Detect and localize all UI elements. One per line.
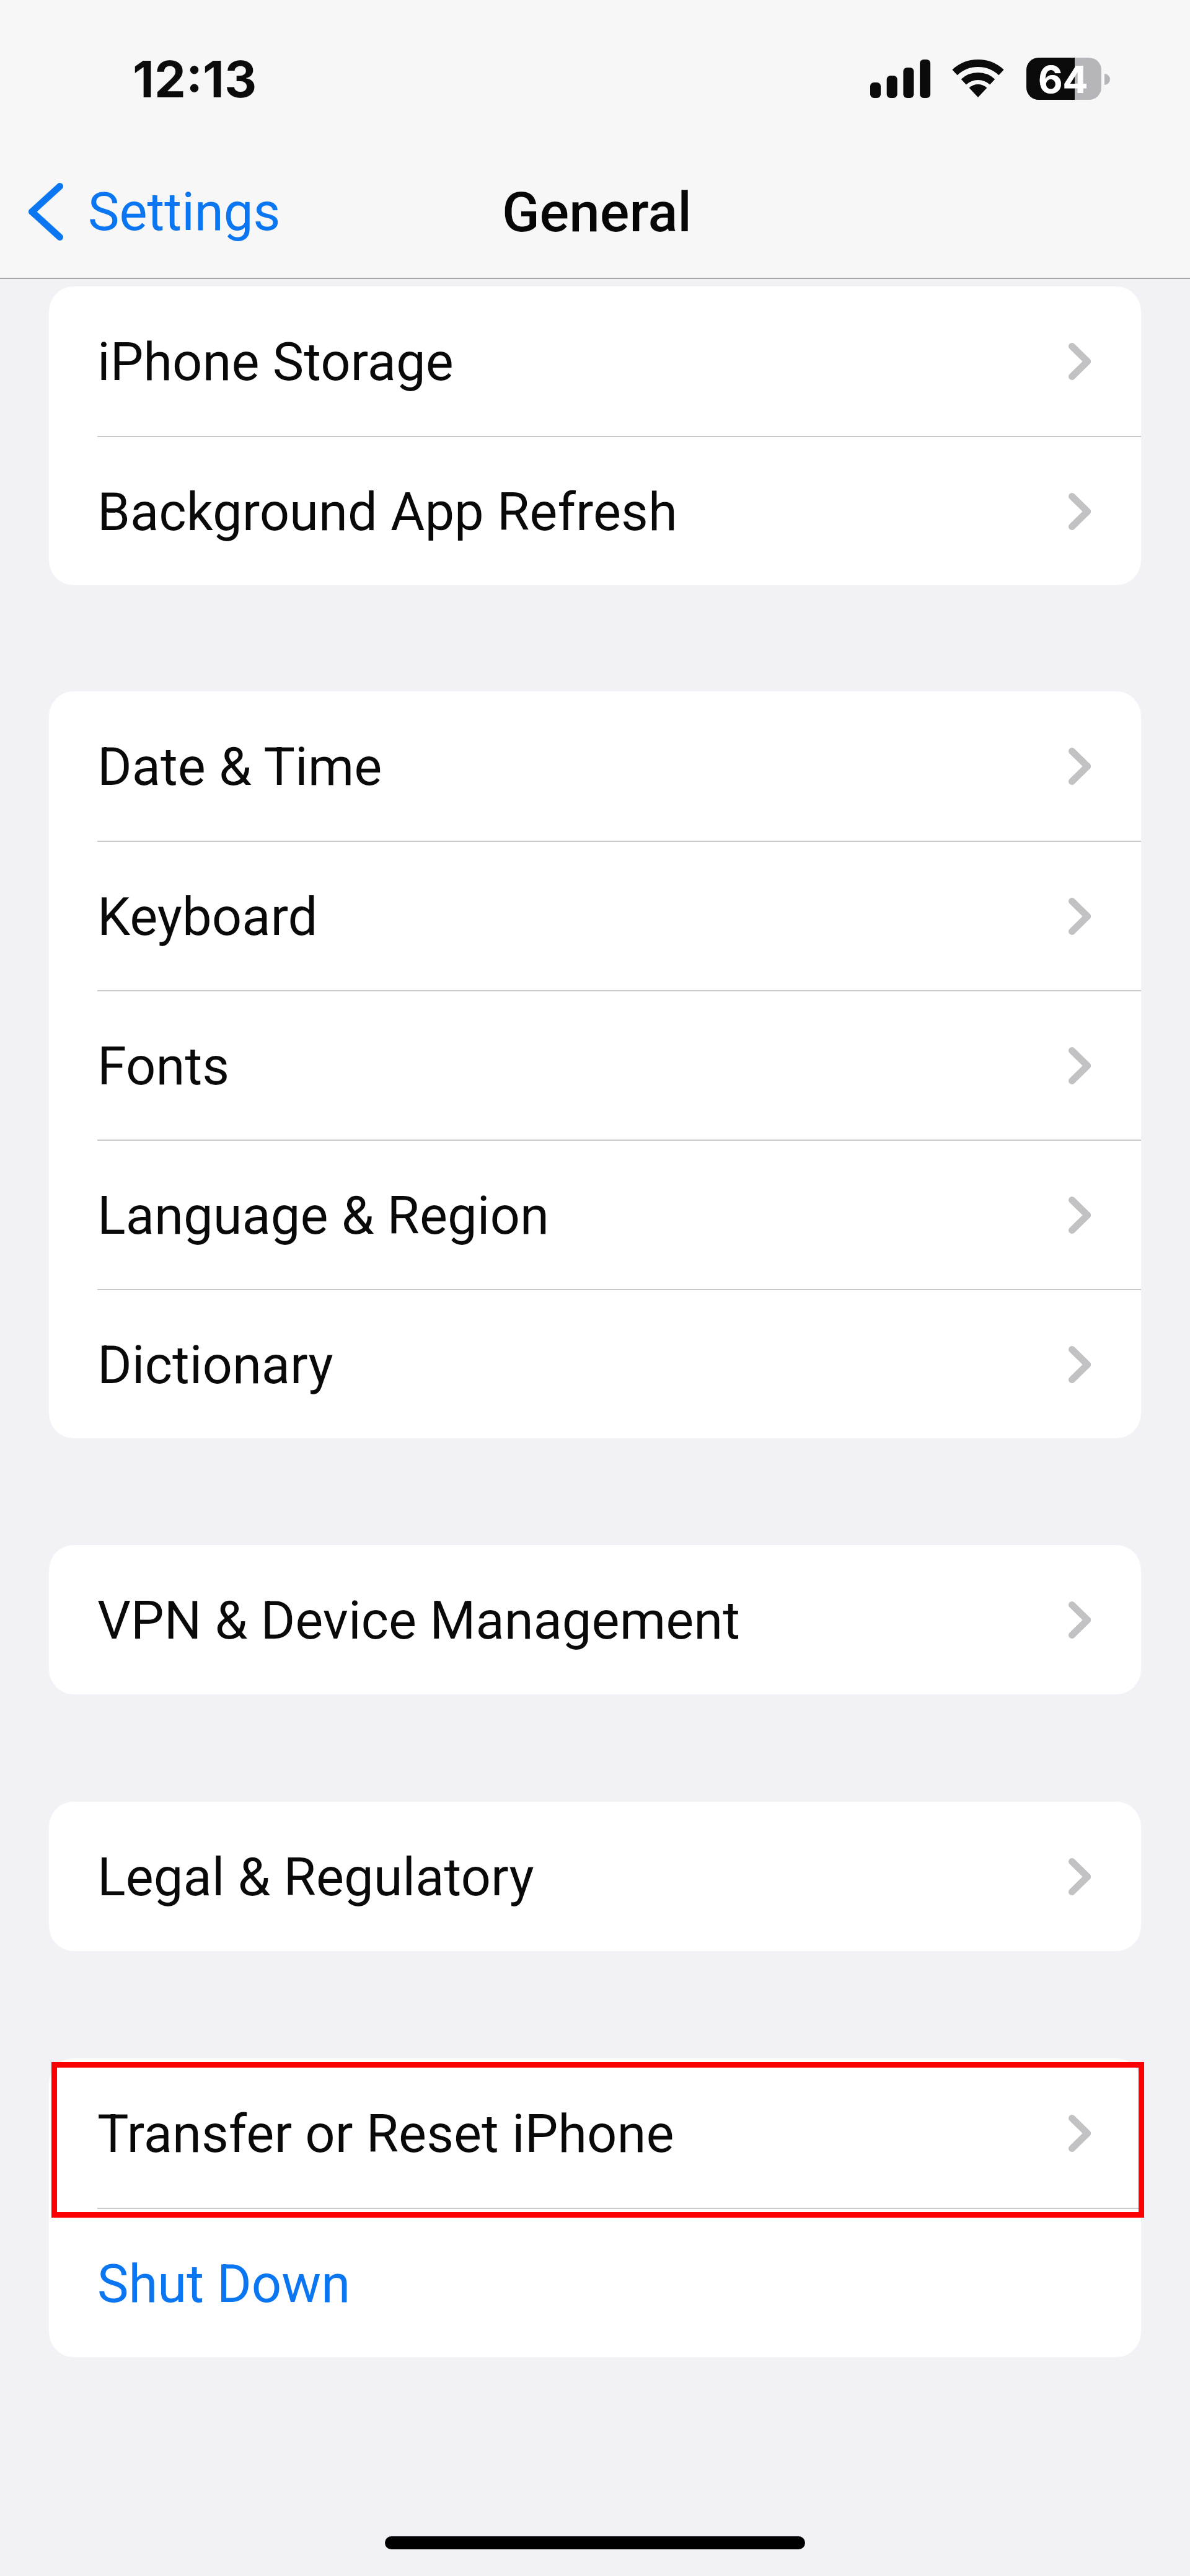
button[interactable]: iPhone Storage (49, 286, 1141, 436)
staticText: VPN & Device Management (97, 1590, 741, 1652)
button[interactable]: Keyboard (49, 842, 1141, 990)
staticText: Keyboard (97, 886, 318, 948)
staticText: Shut Down (97, 2253, 351, 2315)
staticText: Dictionary (97, 1334, 333, 1396)
button[interactable]: Fonts (49, 991, 1141, 1140)
staticText: 64 (1038, 56, 1088, 102)
button[interactable]: Language & Region (49, 1141, 1141, 1289)
button[interactable]: Back to Settings (12, 172, 304, 265)
button[interactable]: Date & Time (49, 691, 1141, 841)
staticText: Date & Time (97, 736, 382, 798)
staticText: General (502, 180, 692, 244)
staticText: Background App Refresh (97, 481, 677, 543)
staticText: 12:13 (133, 49, 257, 110)
button[interactable]: Shut Down (49, 2209, 1141, 2357)
button[interactable]: Transfer or Reset iPhone (49, 2058, 1141, 2208)
button[interactable]: Dictionary (49, 1290, 1141, 1438)
staticText: iPhone Storage (97, 331, 454, 393)
button[interactable]: VPN & Device Management (49, 1545, 1141, 1694)
staticText: Settings (88, 181, 281, 243)
staticText: Fonts (97, 1035, 230, 1097)
staticText: Language & Region (97, 1185, 549, 1247)
staticText: Transfer or Reset iPhone (97, 2103, 674, 2165)
button[interactable]: Background App Refresh (49, 437, 1141, 585)
staticText: Legal & Regulatory (97, 1846, 534, 1908)
button[interactable]: Legal & Regulatory (49, 1802, 1141, 1951)
